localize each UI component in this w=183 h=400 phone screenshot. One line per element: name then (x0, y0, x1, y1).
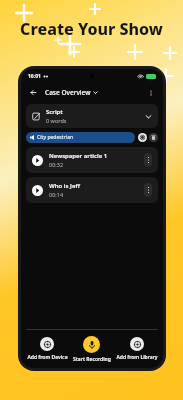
button[interactable]: Delete track (149, 133, 158, 142)
button[interactable]: City pedestrian (26, 132, 135, 143)
button[interactable]: Case Overview (44, 86, 99, 99)
button[interactable]: Add from Device (25, 330, 69, 368)
staticText: City pedestrian (37, 134, 74, 141)
staticText: 0 words (46, 117, 67, 124)
button[interactable]: Play Newspaper article 1 (26, 147, 158, 173)
button[interactable]: Clip options (144, 183, 152, 197)
staticText: Script (46, 108, 63, 116)
staticText: Add from Library (116, 354, 158, 361)
button[interactable]: Add from Library (114, 330, 159, 368)
staticText: Who is Jeff (49, 182, 80, 190)
staticText: 16:01 (28, 73, 41, 80)
button[interactable]: Back (27, 86, 40, 99)
staticText: Newspaper article 1 (49, 152, 108, 160)
button[interactable]: Script (26, 104, 158, 128)
staticText: Create Your Show (20, 18, 163, 40)
button[interactable]: More options (144, 86, 157, 99)
staticText: Add from Device (27, 354, 68, 361)
button[interactable]: Play Who is Jeff (26, 177, 158, 203)
button[interactable]: Clip options (144, 153, 152, 167)
button[interactable]: Play Newspaper article 1 (32, 155, 43, 166)
staticText: Start Recording (73, 356, 111, 363)
staticText: 00:14 (49, 191, 64, 198)
button[interactable]: Play Who is Jeff (32, 185, 43, 196)
button[interactable]: Track settings (138, 133, 147, 142)
button[interactable]: Start Recording (69, 330, 114, 368)
staticText: Case Overview (45, 88, 91, 97)
staticText: 00:32 (49, 161, 64, 168)
